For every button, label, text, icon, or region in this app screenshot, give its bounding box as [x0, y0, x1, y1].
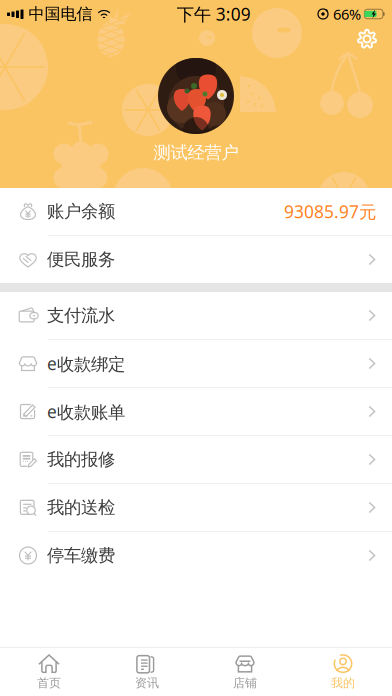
staticText: 测试经营户 — [153, 142, 238, 163]
staticText: 我的报修 — [47, 449, 115, 470]
staticText: e收款绑定 — [47, 352, 125, 375]
staticText: 我的送检 — [47, 497, 115, 518]
staticText: 中国电信 — [28, 4, 92, 24]
button[interactable]: 首页 — [0, 648, 98, 696]
button[interactable]: 支付流水 — [0, 292, 392, 340]
staticText: 店铺 — [233, 676, 257, 690]
staticText: 下午 3:09 — [177, 2, 251, 25]
staticText: 66% — [333, 4, 361, 24]
staticText: 资讯 — [135, 676, 159, 690]
button[interactable]: 店铺 — [196, 648, 294, 696]
staticText: 支付流水 — [47, 305, 115, 326]
staticText: 93085.97元 — [284, 200, 376, 223]
button[interactable]: 便民服务 — [0, 236, 392, 283]
button[interactable]: e收款绑定 — [0, 340, 392, 388]
button[interactable]: 资讯 — [98, 648, 196, 696]
button[interactable]: e收款账单 — [0, 388, 392, 436]
staticText: e收款账单 — [47, 400, 125, 423]
staticText: 便民服务 — [47, 249, 115, 270]
button[interactable]: 停车缴费 — [0, 532, 392, 579]
button[interactable]: Settings — [350, 24, 384, 54]
button[interactable]: 我的 — [294, 648, 392, 696]
button[interactable]: 账户余额 — [0, 188, 392, 236]
button[interactable]: 我的送检 — [0, 484, 392, 532]
staticText: 我的 — [331, 676, 355, 690]
button[interactable]: 我的报修 — [0, 436, 392, 484]
staticText: 首页 — [37, 676, 61, 690]
staticText: 账户余额 — [47, 201, 115, 222]
staticText: 停车缴费 — [47, 545, 115, 566]
